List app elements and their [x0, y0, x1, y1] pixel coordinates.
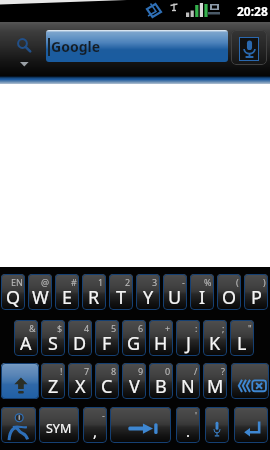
staticText: L	[237, 331, 247, 356]
button[interactable]: 9	[122, 363, 146, 399]
staticText: 0	[165, 365, 171, 377]
button[interactable]: 8	[95, 363, 119, 399]
button[interactable]: Voice search	[231, 30, 267, 65]
staticText: '	[195, 409, 198, 421]
staticText: 4	[84, 322, 90, 334]
button[interactable]: #	[55, 274, 79, 310]
staticText: U	[168, 285, 182, 310]
staticText: J	[186, 331, 191, 356]
staticText: 7	[84, 365, 90, 377]
staticText: :	[195, 322, 198, 334]
staticText: 8	[111, 365, 117, 377]
staticText: (	[236, 276, 239, 288]
staticText: X	[75, 374, 86, 399]
staticText: Google	[51, 37, 101, 56]
button[interactable]: :	[176, 320, 200, 356]
staticText: SYM	[46, 420, 72, 437]
staticText: F	[102, 331, 112, 356]
button[interactable]: 3	[136, 274, 160, 310]
staticText: .	[186, 421, 191, 441]
staticText: -	[182, 276, 185, 288]
button[interactable]: "	[230, 320, 254, 356]
staticText: C	[101, 374, 113, 399]
staticText: 3	[152, 276, 158, 288]
button[interactable]: !	[41, 363, 65, 399]
button[interactable]: $	[41, 320, 65, 356]
staticText: #	[71, 276, 77, 288]
staticText: Z	[48, 374, 59, 399]
button[interactable]: '	[176, 407, 200, 443]
staticText: %	[204, 276, 212, 288]
button[interactable]: )	[244, 274, 268, 310]
staticText: 6	[138, 322, 144, 334]
staticText: P	[251, 285, 262, 310]
staticText: A	[20, 331, 32, 356]
button[interactable]: Google	[46, 30, 228, 62]
staticText: )	[263, 276, 266, 288]
staticText: 20:28	[237, 3, 268, 19]
staticText: $	[57, 322, 63, 334]
button[interactable]: ?	[203, 363, 227, 399]
button[interactable]: @	[28, 274, 52, 310]
button[interactable]: -	[163, 274, 187, 310]
staticText: D	[73, 331, 87, 356]
button[interactable]: Space	[110, 407, 171, 443]
button[interactable]: Enter	[234, 407, 268, 443]
button[interactable]: 0	[149, 363, 173, 399]
staticText: "	[248, 322, 252, 334]
staticText: ,	[93, 421, 98, 441]
button[interactable]: (	[217, 274, 241, 310]
button[interactable]: +	[149, 320, 173, 356]
staticText: !	[60, 365, 63, 377]
staticText: Q	[6, 285, 21, 310]
staticText: M	[207, 374, 224, 399]
staticText: W	[32, 285, 49, 310]
staticText: EN	[11, 276, 23, 288]
staticText: -	[102, 409, 105, 421]
button[interactable]: 6	[122, 320, 146, 356]
staticText: &	[29, 322, 36, 334]
button[interactable]: -	[83, 407, 107, 443]
staticText: /	[194, 365, 198, 377]
staticText: 5	[111, 322, 117, 334]
staticText: B	[155, 374, 167, 399]
button[interactable]: 2	[109, 274, 133, 310]
button[interactable]: Delete	[231, 363, 269, 399]
button[interactable]: ;	[203, 320, 227, 356]
staticText: H	[154, 331, 168, 356]
button[interactable]: 1	[82, 274, 106, 310]
staticText: E	[62, 285, 73, 310]
staticText: O	[222, 285, 237, 310]
staticText: K	[209, 331, 221, 356]
button[interactable]: SYM	[39, 407, 79, 443]
button[interactable]: 5	[95, 320, 119, 356]
staticText: 9	[138, 365, 144, 377]
staticText: R	[88, 285, 100, 310]
staticText: S	[48, 331, 58, 356]
button[interactable]: Change input method	[1, 407, 36, 443]
staticText: N	[181, 374, 195, 399]
staticText: +	[165, 322, 171, 334]
staticText: ;	[222, 322, 225, 334]
button[interactable]: Voice input	[205, 407, 229, 443]
staticText: I	[199, 285, 206, 310]
button[interactable]: 4	[68, 320, 92, 356]
staticText: ?	[221, 365, 225, 377]
button[interactable]: Search source	[10, 30, 40, 70]
button[interactable]: %	[190, 274, 214, 310]
staticText: @	[41, 276, 50, 288]
staticText: V	[129, 374, 140, 399]
staticText: T	[116, 285, 127, 310]
button[interactable]: 7	[68, 363, 92, 399]
staticText: G	[127, 331, 141, 356]
staticText: 1	[98, 276, 104, 288]
button[interactable]: EN	[1, 274, 25, 310]
staticText: 2	[125, 276, 131, 288]
button[interactable]: /	[176, 363, 200, 399]
button[interactable]: &	[14, 320, 38, 356]
button[interactable]: Shift	[1, 363, 39, 399]
staticText: Y	[143, 285, 154, 310]
